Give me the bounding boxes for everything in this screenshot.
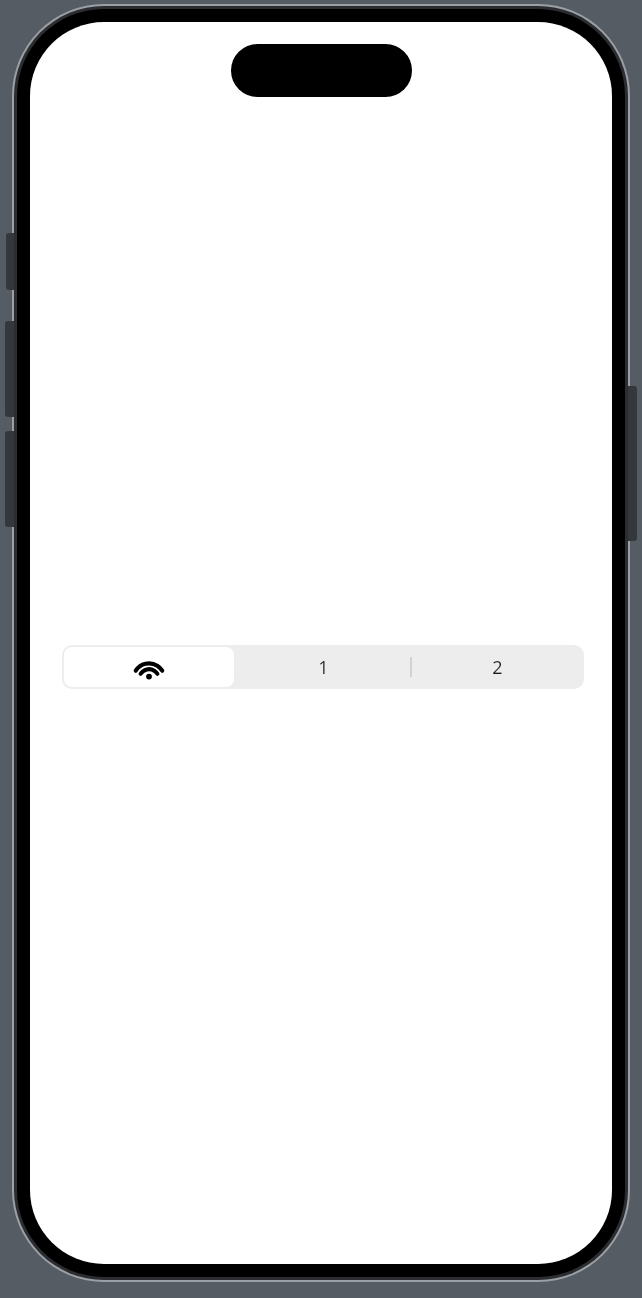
button[interactable]: Wi-Fi [64,647,234,687]
button[interactable]: 2 [410,645,584,689]
staticText: 2 [492,655,503,680]
button[interactable]: 1 [236,645,410,689]
staticText: 1 [318,655,329,680]
